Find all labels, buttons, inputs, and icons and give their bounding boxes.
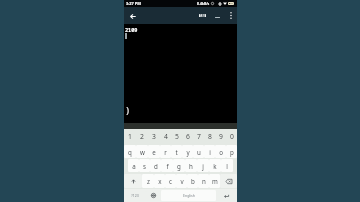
button[interactable]: z bbox=[142, 174, 154, 188]
staticText: c bbox=[169, 177, 172, 185]
button[interactable]: d bbox=[150, 159, 161, 172]
staticText: ) bbox=[125, 104, 131, 116]
staticText: 0 bbox=[230, 132, 234, 141]
staticText: l bbox=[226, 162, 228, 170]
button[interactable]: 1 bbox=[124, 129, 136, 144]
button[interactable]: 0 bbox=[226, 129, 237, 144]
staticText: w bbox=[140, 148, 145, 156]
button[interactable]: v bbox=[176, 174, 187, 188]
button[interactable]: More options bbox=[225, 7, 237, 24]
button[interactable]: r bbox=[160, 145, 171, 158]
staticText: English bbox=[183, 193, 195, 198]
staticText: TAB bbox=[200, 14, 206, 17]
button[interactable]: p bbox=[226, 145, 237, 158]
button[interactable]: i bbox=[204, 145, 215, 158]
button[interactable]: enter bbox=[216, 190, 237, 201]
staticText: n bbox=[202, 177, 206, 185]
button[interactable]: English bbox=[161, 190, 216, 201]
button[interactable]: del bbox=[220, 174, 237, 188]
staticText: 2109 bbox=[125, 26, 138, 33]
button[interactable]: m bbox=[209, 174, 220, 188]
button[interactable]: h bbox=[185, 159, 197, 172]
staticText: k bbox=[213, 162, 217, 170]
staticText: 4 bbox=[164, 132, 168, 141]
staticText: h bbox=[189, 162, 193, 170]
button[interactable]: shift bbox=[124, 174, 142, 188]
staticText: o bbox=[219, 148, 223, 156]
staticText: f bbox=[166, 162, 169, 170]
staticText: q bbox=[128, 148, 132, 156]
staticText: y bbox=[186, 148, 190, 156]
button[interactable]: 2 bbox=[136, 129, 148, 144]
staticText: u bbox=[197, 148, 201, 156]
button[interactable]: 6 bbox=[182, 129, 193, 144]
button[interactable]: f bbox=[161, 159, 173, 172]
staticText: 3:27 PM bbox=[126, 1, 141, 6]
button[interactable]: l bbox=[221, 159, 233, 172]
staticText: b bbox=[191, 177, 195, 185]
button[interactable]: Back bbox=[127, 10, 139, 22]
button[interactable]: n bbox=[198, 174, 209, 188]
staticText: s bbox=[143, 162, 146, 170]
staticText: 5 bbox=[175, 132, 179, 141]
button[interactable]: 7 bbox=[193, 129, 204, 144]
button[interactable]: a bbox=[128, 159, 139, 172]
staticText: m bbox=[212, 177, 218, 185]
staticText: 7 bbox=[197, 132, 201, 141]
button[interactable]: 8 bbox=[204, 129, 215, 144]
button[interactable]: 4 bbox=[160, 129, 171, 144]
staticText: a bbox=[132, 162, 136, 170]
staticText: ?123 bbox=[131, 193, 139, 198]
staticText: 9 bbox=[219, 132, 223, 141]
button[interactable]: g bbox=[173, 159, 185, 172]
staticText: v bbox=[180, 177, 184, 185]
staticText: 8.4kB/s bbox=[197, 1, 210, 6]
button[interactable]: c bbox=[165, 174, 176, 188]
button[interactable]: s bbox=[139, 159, 150, 172]
button[interactable]: x bbox=[154, 174, 165, 188]
button[interactable]: o bbox=[215, 145, 226, 158]
button[interactable]: 9 bbox=[215, 129, 226, 144]
staticText: 3 bbox=[152, 132, 156, 141]
staticText: t bbox=[175, 148, 178, 156]
staticText: e bbox=[152, 148, 156, 156]
staticText: j bbox=[202, 162, 204, 170]
staticText: 6 bbox=[186, 132, 190, 141]
button[interactable]: j bbox=[197, 159, 209, 172]
staticText: i bbox=[209, 148, 211, 156]
button[interactable]: ?123 bbox=[124, 190, 146, 201]
staticText: x bbox=[158, 177, 162, 185]
button[interactable]: y bbox=[182, 145, 193, 158]
button[interactable]: globe bbox=[146, 190, 161, 201]
button[interactable]: Tab key bbox=[196, 9, 209, 22]
button[interactable]: u bbox=[193, 145, 204, 158]
staticText: g bbox=[177, 162, 181, 170]
button[interactable]: q bbox=[124, 145, 136, 158]
button[interactable]: t bbox=[171, 145, 182, 158]
staticText: d bbox=[154, 162, 158, 170]
staticText: 8 bbox=[208, 132, 212, 141]
button[interactable]: w bbox=[136, 145, 148, 158]
button[interactable]: e bbox=[148, 145, 160, 158]
button[interactable]: 3 bbox=[148, 129, 160, 144]
button[interactable]: b bbox=[187, 174, 198, 188]
button[interactable]: Minimize bbox=[211, 9, 224, 22]
button[interactable]: k bbox=[209, 159, 221, 172]
staticText: r bbox=[164, 148, 167, 156]
staticText: 2 bbox=[140, 132, 144, 141]
button[interactable]: 5 bbox=[171, 129, 182, 144]
staticText: z bbox=[147, 177, 150, 185]
staticText: 1 bbox=[128, 132, 132, 141]
staticText: p bbox=[230, 148, 234, 156]
